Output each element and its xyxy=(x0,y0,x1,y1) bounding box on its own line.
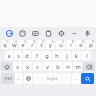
staticText: a xyxy=(7,52,11,60)
staticText: x xyxy=(26,63,29,71)
staticText: 0 xyxy=(92,40,94,44)
button[interactable]: k xyxy=(72,51,81,60)
button[interactable]: More options xyxy=(68,27,81,39)
staticText: n xyxy=(66,63,70,71)
staticText: p xyxy=(89,41,93,49)
button[interactable]: p xyxy=(86,40,95,49)
staticText: i xyxy=(70,41,72,49)
button[interactable]: Voice input xyxy=(81,27,94,39)
staticText: z xyxy=(16,63,19,71)
staticText: q xyxy=(3,41,7,49)
button[interactable]: Shift xyxy=(1,62,12,71)
button[interactable]: j xyxy=(62,51,71,60)
staticText: , xyxy=(18,75,20,82)
button[interactable]: l xyxy=(82,51,91,60)
staticText: t xyxy=(40,41,43,49)
button[interactable]: Space xyxy=(33,73,71,84)
staticText: 6 xyxy=(52,40,54,44)
button[interactable]: Clipboard xyxy=(42,27,55,39)
button[interactable]: y xyxy=(46,40,55,49)
staticText: ?123 xyxy=(4,76,12,81)
button[interactable]: h xyxy=(52,51,61,60)
staticText: 2 xyxy=(15,40,17,44)
button[interactable]: d xyxy=(23,51,31,60)
staticText: . xyxy=(75,75,77,82)
staticText: w xyxy=(12,41,17,49)
button[interactable]: v xyxy=(43,62,52,71)
button[interactable]: Google search xyxy=(2,27,16,39)
button[interactable]: Search xyxy=(81,73,94,84)
button[interactable]: u xyxy=(56,40,65,49)
staticText: j xyxy=(66,52,68,60)
staticText: 3 xyxy=(24,40,26,44)
button[interactable]: Settings xyxy=(55,27,68,39)
button[interactable]: Backspace xyxy=(83,62,95,71)
staticText: u xyxy=(59,41,63,49)
button[interactable]: e xyxy=(19,40,27,49)
button[interactable]: w xyxy=(10,40,18,49)
staticText: 7 xyxy=(62,40,64,44)
button[interactable]: c xyxy=(33,62,42,71)
button[interactable]: n xyxy=(63,62,72,71)
button[interactable]: ?123 xyxy=(1,73,14,84)
button[interactable]: GIF xyxy=(29,27,42,39)
button[interactable]: Switch language xyxy=(24,73,32,84)
staticText: 9 xyxy=(82,40,84,44)
staticText: h xyxy=(55,52,59,60)
button[interactable]: g xyxy=(42,51,51,60)
button[interactable]: i xyxy=(66,40,75,49)
staticText: b xyxy=(56,63,60,71)
button[interactable]: m xyxy=(73,62,82,71)
button[interactable]: Stickers xyxy=(16,27,29,39)
staticText: m xyxy=(75,63,81,71)
button[interactable]: t xyxy=(37,40,45,49)
button[interactable]: , xyxy=(15,73,23,84)
button[interactable]: s xyxy=(14,51,22,60)
staticText: English xyxy=(47,77,58,81)
staticText: v xyxy=(46,63,49,71)
staticText: o xyxy=(79,41,83,49)
button[interactable]: b xyxy=(53,62,62,71)
staticText: g xyxy=(45,52,49,60)
button[interactable]: r xyxy=(28,40,36,49)
staticText: 8 xyxy=(72,40,74,44)
button[interactable]: x xyxy=(23,62,32,71)
button[interactable]: q xyxy=(1,40,9,49)
staticText: d xyxy=(25,52,29,60)
staticText: c xyxy=(36,63,39,71)
button[interactable]: z xyxy=(13,62,22,71)
staticText: l xyxy=(86,52,88,60)
staticText: k xyxy=(75,52,78,60)
staticText: 4 xyxy=(33,40,35,44)
button[interactable]: . xyxy=(72,73,80,84)
staticText: e xyxy=(21,41,25,49)
staticText: 1 xyxy=(6,40,8,44)
staticText: r xyxy=(31,41,34,49)
button[interactable]: o xyxy=(76,40,85,49)
staticText: 5 xyxy=(42,40,44,44)
staticText: f xyxy=(36,52,38,60)
button[interactable]: f xyxy=(32,51,41,60)
staticText: y xyxy=(49,41,52,49)
staticText: s xyxy=(17,52,20,60)
button[interactable]: a xyxy=(5,51,13,60)
